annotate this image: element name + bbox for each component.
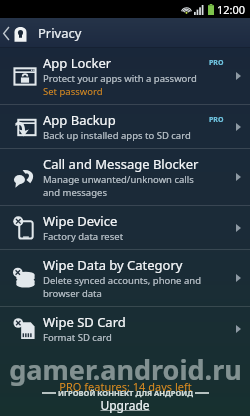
staticText: Wipe Device xyxy=(43,212,118,230)
staticText: gamer.android.ru xyxy=(9,351,242,388)
staticText: PRO xyxy=(209,115,224,125)
staticText: Format SD card xyxy=(43,331,112,344)
staticText: Privacy xyxy=(38,24,82,42)
staticText: Set password xyxy=(43,85,103,98)
button[interactable]: PRO features: 14 days left xyxy=(0,379,250,416)
staticText: App Backup xyxy=(43,111,116,129)
staticText: 12:00 xyxy=(217,2,246,17)
button[interactable]: Call and Message Blocker xyxy=(0,149,250,205)
staticText: Wipe SD Card xyxy=(43,313,126,331)
staticText: Protect your apps with a password xyxy=(43,72,197,85)
button[interactable]: Wipe Device xyxy=(0,206,250,249)
staticText: Wipe Data by Category xyxy=(43,256,183,274)
staticText: Back up installed apps to SD card xyxy=(43,129,191,142)
staticText: PRO xyxy=(209,58,224,68)
staticText: Delete synced accounts, phone and xyxy=(43,274,201,287)
staticText: PRO features: 14 days left xyxy=(59,379,192,394)
staticText: Factory data reset xyxy=(43,230,124,243)
button[interactable]: Back xyxy=(0,22,32,45)
button[interactable]: App Backup xyxy=(0,105,250,148)
staticText: and messages xyxy=(43,186,107,199)
button[interactable]: Wipe SD Card xyxy=(0,307,250,350)
button[interactable]: App Locker xyxy=(0,48,250,104)
button[interactable]: Wipe Data by Category xyxy=(0,250,250,306)
staticText: App Locker xyxy=(43,54,112,72)
staticText: Call and Message Blocker xyxy=(43,155,199,173)
staticText: Manage unwanted/unknown calls xyxy=(43,173,194,186)
staticText: Upgrade xyxy=(100,397,150,413)
staticText: ИГРОВОЙ КОННЕКТ ДЛЯ АНДРОИД xyxy=(56,388,195,398)
staticText: browser data xyxy=(43,287,102,300)
